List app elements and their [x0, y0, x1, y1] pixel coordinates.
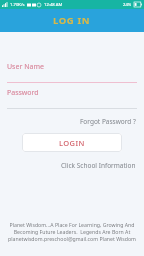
staticText: Forgot Password ?	[80, 117, 136, 126]
button[interactable]: Click School Information	[53, 159, 144, 172]
button[interactable]: LOGIN	[22, 133, 122, 152]
staticText: 24%	[123, 2, 132, 8]
staticText: 1.70K/s	[10, 2, 25, 8]
button[interactable]: User Name	[0, 54, 144, 83]
staticText: User Name	[7, 62, 44, 72]
staticText: Password	[7, 88, 39, 98]
staticText: LOGIN	[59, 138, 85, 148]
button[interactable]: Forgot Password ?	[72, 115, 144, 128]
staticText: Click School Information	[61, 161, 136, 170]
staticText: Planet Wisdom...A Place For Learning, Gr…	[8, 221, 136, 242]
staticText: LOG IN	[53, 14, 91, 27]
staticText: 12:48 AM	[44, 2, 63, 8]
button[interactable]: Password	[0, 88, 144, 109]
